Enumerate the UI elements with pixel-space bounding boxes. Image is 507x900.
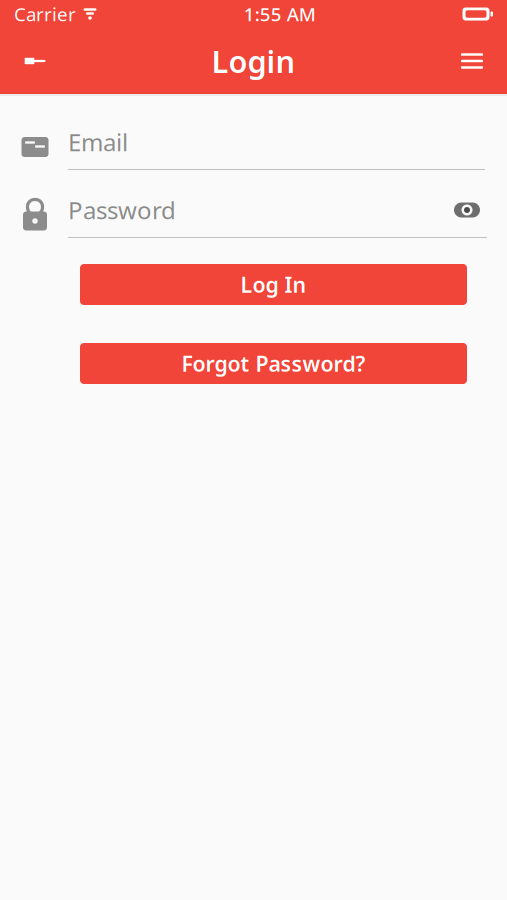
staticText: Carrier bbox=[14, 2, 76, 26]
staticText: 1:55 AM bbox=[244, 2, 316, 26]
staticText: Email bbox=[68, 126, 128, 158]
button[interactable]: Forgot Password? bbox=[80, 343, 467, 384]
button[interactable]: Log In bbox=[80, 264, 467, 305]
staticText: Password bbox=[68, 194, 176, 226]
button[interactable]: Show password bbox=[447, 193, 487, 227]
button[interactable]: Menu bbox=[449, 35, 495, 87]
staticText: Log In bbox=[240, 270, 306, 299]
button[interactable]: Back bbox=[12, 35, 58, 87]
staticText: Login bbox=[211, 41, 295, 81]
staticText: Forgot Password? bbox=[181, 349, 365, 378]
